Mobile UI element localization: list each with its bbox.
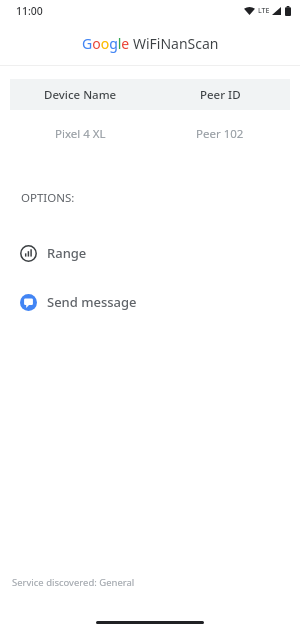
staticText: Peer 102 bbox=[196, 126, 244, 142]
staticText: Range bbox=[47, 244, 87, 262]
button[interactable]: Range bbox=[0, 241, 300, 265]
staticText: LTE bbox=[258, 6, 270, 16]
other: Send message bbox=[20, 294, 37, 311]
staticText: Send message bbox=[47, 293, 137, 311]
staticText: Peer ID bbox=[200, 87, 241, 103]
staticText: Google WiFiNanScan bbox=[82, 34, 219, 53]
staticText: 11:00 bbox=[16, 4, 43, 18]
button[interactable]: Pixel 4 XL bbox=[10, 124, 290, 144]
staticText: OPTIONS: bbox=[21, 190, 75, 206]
staticText: Pixel 4 XL bbox=[55, 126, 106, 142]
button[interactable]: Send message bbox=[0, 290, 300, 314]
staticText: Service discovered: General bbox=[12, 576, 135, 589]
staticText: Device Name bbox=[44, 87, 117, 103]
other: Range bbox=[20, 245, 37, 262]
